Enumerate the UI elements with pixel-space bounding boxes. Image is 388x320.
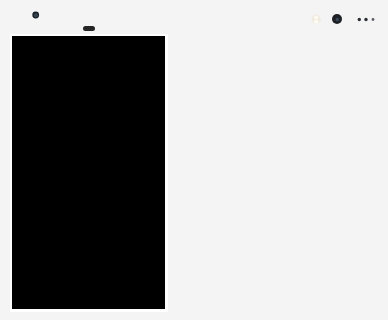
button[interactable]: Navigate up	[32, 11, 40, 19]
button[interactable]: Account	[332, 14, 342, 24]
button[interactable]: More options	[355, 13, 377, 26]
button[interactable]: Open preview	[10, 34, 168, 312]
button[interactable]: Profile	[310, 13, 322, 25]
